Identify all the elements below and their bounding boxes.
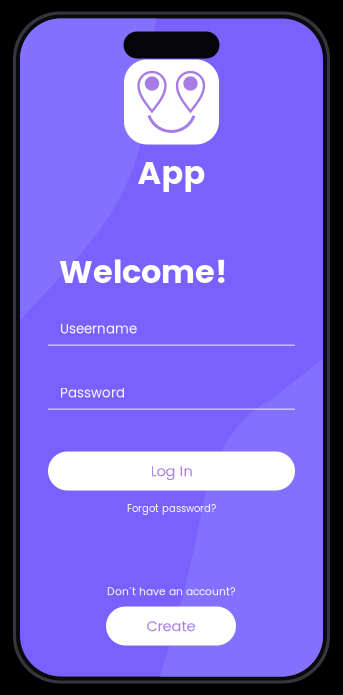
staticText: Don´t have an account? (107, 584, 236, 599)
staticText: Useername (60, 319, 137, 338)
button[interactable]: Forgot password? (20, 500, 323, 516)
button[interactable]: Log In (48, 451, 295, 490)
staticText: Password (60, 383, 125, 402)
staticText: Log In (150, 461, 192, 481)
staticText: App (137, 150, 205, 195)
staticText: Create (146, 616, 195, 636)
button[interactable]: Create (106, 606, 236, 645)
staticText: Welcome! (59, 249, 228, 294)
staticText: Forgot password? (127, 501, 216, 515)
